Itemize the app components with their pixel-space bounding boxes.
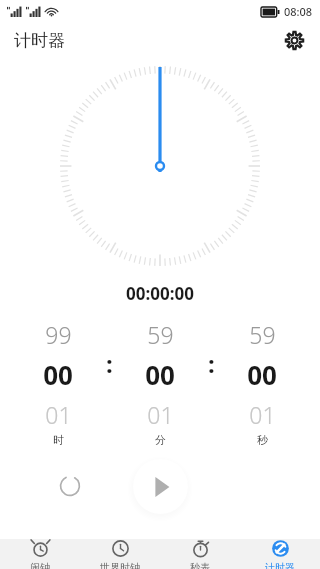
button[interactable]: 秒表 (160, 539, 240, 569)
staticText: 01 (249, 399, 276, 430)
button[interactable]: 计时器 (240, 539, 320, 569)
button[interactable]: Start (133, 459, 188, 514)
staticText: 00 (247, 357, 277, 392)
staticText: 08:08 (284, 4, 313, 19)
button[interactable]: 闹钟 (0, 539, 80, 569)
button[interactable]: 世界时钟 (80, 539, 160, 569)
staticText: 计时器 (265, 561, 295, 569)
staticText: 世界时钟 (100, 561, 140, 569)
staticText: 01 (45, 399, 72, 430)
button[interactable]: Settings (276, 22, 312, 58)
staticText: 时 (53, 433, 64, 447)
button[interactable]: Reset (48, 464, 92, 508)
staticText: : (208, 347, 215, 380)
staticText: 秒表 (190, 561, 210, 569)
staticText: 99 (45, 319, 72, 350)
staticText: : (106, 347, 113, 380)
button[interactable]: 99 (18, 319, 98, 447)
staticText: 00 (145, 357, 175, 392)
button[interactable]: 59 (222, 319, 302, 447)
button[interactable]: 59 (120, 319, 200, 447)
staticText: 秒 (257, 433, 268, 447)
staticText: 59 (147, 319, 174, 350)
staticText: 闹钟 (30, 561, 50, 569)
staticText: 计时器 (14, 30, 65, 51)
staticText: 分 (155, 433, 166, 447)
staticText: 00:00:00 (126, 282, 194, 305)
staticText: 01 (147, 399, 174, 430)
staticText: 59 (249, 319, 276, 350)
staticText: 00 (43, 357, 73, 392)
